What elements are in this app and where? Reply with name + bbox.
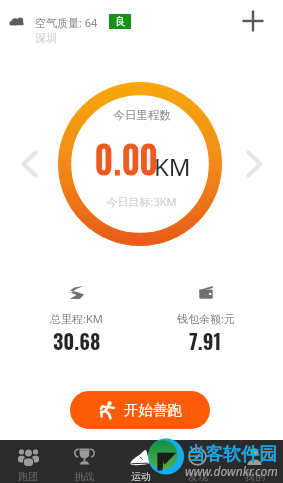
staticText: 钱包余额:元 [177, 311, 235, 326]
button[interactable]: 钱包余额:元 [142, 286, 269, 356]
staticText: 今日目标:3KM [106, 194, 177, 209]
staticText: 运动 [131, 470, 151, 483]
button[interactable]: 我的 [226, 440, 283, 483]
staticText: 发现 [188, 470, 208, 483]
staticText: 空气质量: 64 [35, 15, 98, 30]
staticText: 7.91 [189, 326, 222, 356]
staticText: KM [154, 150, 191, 183]
staticText: 良 [115, 15, 126, 28]
staticText: www.downkr.com [185, 463, 278, 479]
staticText: 开始善跑 [124, 401, 182, 419]
button[interactable]: 运动 [112, 440, 169, 483]
staticText: 30.68 [53, 326, 101, 356]
staticText: 今日里程数 [113, 108, 171, 122]
button[interactable]: 发现 [169, 440, 226, 483]
staticText: 0.00 [95, 133, 158, 180]
button[interactable]: 总里程:KM [13, 286, 140, 356]
staticText: 当客软件园 [187, 443, 277, 466]
staticText: 深圳 [35, 31, 57, 45]
staticText: 挑战 [74, 470, 94, 483]
staticText: 总里程:KM [50, 311, 103, 326]
staticText: 跑团 [18, 470, 38, 483]
button[interactable]: Next day [238, 148, 270, 180]
button[interactable]: Previous day [13, 148, 45, 180]
button[interactable]: Add [240, 8, 266, 34]
button[interactable]: 挑战 [56, 440, 112, 483]
staticText: 我的 [245, 470, 265, 483]
button[interactable]: 开始善跑 [70, 391, 210, 429]
button[interactable]: 跑团 [0, 440, 56, 483]
